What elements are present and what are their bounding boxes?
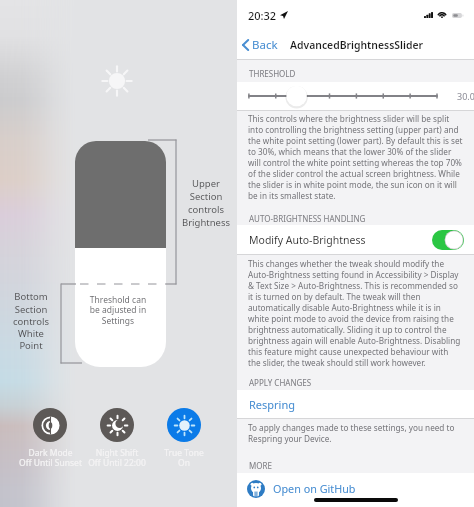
button[interactable]: Back: [237, 30, 281, 59]
staticText: THRESHOLD: [249, 68, 296, 79]
staticText: AUTO-BRIGHTNESS HANDLING: [249, 213, 366, 224]
button[interactable]: Threshold slider: [237, 82, 474, 110]
staticText: 20:32: [248, 8, 277, 23]
staticText: This controls where the brightness slide…: [248, 113, 463, 201]
staticText: True Tone On: [164, 447, 204, 468]
button[interactable]: True Tone: [150, 408, 217, 468]
staticText: Upper Section controls Brightness: [180, 177, 232, 229]
staticText: Dark Mode Off Until Sunset: [19, 447, 82, 468]
staticText: MORE: [249, 460, 272, 471]
staticText: Threshold can be adjusted in Settings: [82, 294, 154, 327]
button[interactable]: Night Shift: [83, 408, 150, 468]
staticText: To apply changes made to these settings,…: [248, 422, 463, 444]
staticText: Back: [252, 37, 278, 53]
staticText: This changes whether the tweak should mo…: [248, 258, 463, 368]
staticText: Bottom Section controls White Point: [5, 290, 57, 352]
staticText: Respring: [249, 397, 296, 412]
button[interactable]: Open on GitHub: [237, 473, 474, 504]
staticText: 30.0: [457, 90, 474, 102]
button[interactable]: Respring: [237, 390, 474, 418]
staticText: Night Shift Off Until 22:00: [88, 447, 146, 468]
staticText: APPLY CHANGES: [249, 377, 312, 388]
button[interactable]: Modify Auto-Brightness: [237, 225, 474, 254]
staticText: Open on GitHub: [273, 481, 356, 496]
staticText: Modify Auto-Brightness: [249, 233, 366, 247]
staticText: AdvancedBrightnessSlider: [290, 38, 423, 52]
button[interactable]: Brightness slider: [75, 141, 166, 367]
button[interactable]: Dark Mode: [17, 408, 83, 468]
